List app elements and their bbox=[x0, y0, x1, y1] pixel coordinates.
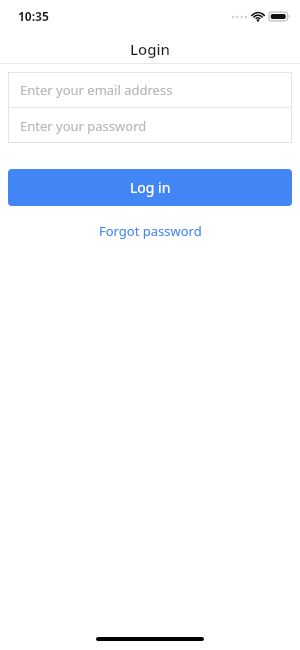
staticText: Enter your password bbox=[20, 117, 147, 135]
staticText: 10:35 bbox=[18, 8, 49, 24]
staticText: Log in bbox=[130, 178, 171, 197]
button[interactable]: Forgot password bbox=[0, 220, 300, 242]
staticText: Login bbox=[130, 39, 170, 59]
staticText: Enter your email address bbox=[20, 81, 173, 99]
staticText: Forgot password bbox=[99, 222, 202, 240]
button[interactable]: Enter your password bbox=[8, 108, 292, 143]
button[interactable]: Enter your email address bbox=[8, 72, 292, 107]
button[interactable]: Log in bbox=[8, 169, 292, 206]
